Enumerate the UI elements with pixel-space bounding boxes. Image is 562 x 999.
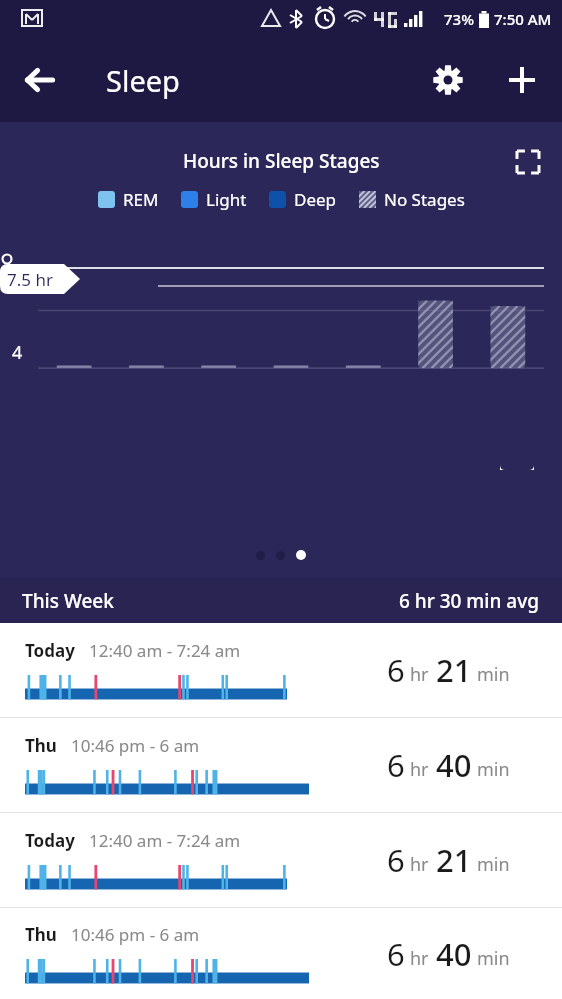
button[interactable]: Light — [181, 188, 247, 211]
staticText: hr — [410, 946, 429, 971]
staticText: 6 — [387, 744, 405, 786]
staticText: min — [477, 852, 510, 877]
staticText: 10:46 pm - 6 am — [71, 734, 200, 757]
staticText: 21 — [436, 839, 472, 881]
staticText: 12:40 am - 7:24 am — [89, 639, 241, 662]
staticText: Hours in Sleep Stages — [183, 148, 380, 174]
staticText: 6 hr 30 min avg — [399, 588, 540, 614]
button[interactable]: Add — [496, 54, 548, 106]
staticText: 6 — [387, 649, 405, 691]
staticText: No Stages — [384, 188, 465, 211]
button[interactable]: Expand chart — [506, 140, 550, 184]
staticText: hr — [410, 662, 429, 687]
button[interactable]: REM — [98, 188, 159, 211]
staticText: min — [477, 757, 510, 782]
staticText: hr — [410, 852, 429, 877]
staticText: hr — [410, 757, 429, 782]
staticText: min — [477, 662, 510, 687]
staticText: 6 — [387, 839, 405, 881]
button[interactable]: Back — [14, 54, 66, 106]
staticText: Thu — [25, 923, 57, 946]
button[interactable]: Deep — [269, 188, 337, 211]
staticText: Sleep — [106, 61, 180, 100]
staticText: This Week — [22, 588, 114, 614]
button[interactable]: Settings — [422, 54, 474, 106]
staticText: Deep — [294, 188, 337, 211]
button[interactable]: No Stages — [359, 188, 465, 211]
staticText: Today — [25, 829, 75, 852]
staticText: REM — [123, 188, 159, 211]
staticText: Thu — [25, 734, 57, 757]
staticText: 7.5 hr — [7, 268, 53, 291]
staticText: 4 — [12, 340, 23, 365]
staticText: Light — [206, 188, 247, 211]
button[interactable]: Today — [0, 813, 562, 907]
staticText: 6 — [387, 933, 405, 975]
staticText: 73% — [444, 9, 474, 29]
button[interactable]: This Week — [0, 578, 562, 623]
staticText: Today — [25, 639, 75, 662]
button[interactable]: Thu — [0, 718, 562, 812]
button[interactable]: Thu — [0, 908, 562, 999]
staticText: 40 — [436, 933, 472, 975]
staticText: 12:40 am - 7:24 am — [89, 829, 241, 852]
staticText: 40 — [436, 744, 472, 786]
staticText: 21 — [436, 649, 472, 691]
staticText: min — [477, 946, 510, 971]
staticText: 10:46 pm - 6 am — [71, 923, 200, 946]
button[interactable]: Today — [0, 623, 562, 717]
staticText: 7:50 AM — [494, 9, 552, 29]
